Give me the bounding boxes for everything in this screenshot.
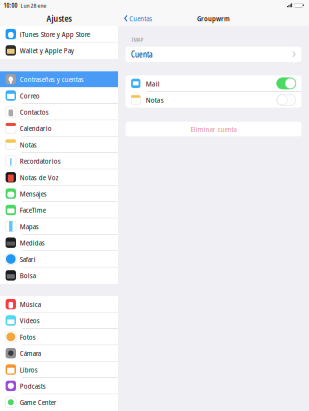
button[interactable]: Cuentas: [118, 10, 156, 26]
staticText: Mail: [146, 78, 160, 89]
button[interactable]: iTunes Store y App Store: [0, 26, 118, 43]
button[interactable]: Mapas: [0, 218, 118, 235]
staticText: Podcasts: [20, 381, 46, 391]
button[interactable]: Mail: [125, 75, 301, 91]
staticText: Wallet y Apple Pay: [20, 45, 74, 55]
button[interactable]: Libros: [0, 362, 118, 378]
staticText: IMAP: [132, 36, 144, 43]
button[interactable]: Bolsa: [0, 267, 118, 284]
button[interactable]: Música: [0, 296, 118, 313]
staticText: Notas: [20, 139, 37, 150]
button[interactable]: Contraseñas y cuentas: [0, 71, 118, 88]
button[interactable]: Podcasts: [0, 378, 118, 394]
button[interactable]: Medidas: [0, 235, 118, 251]
button[interactable]: Mail: [277, 78, 296, 89]
staticText: Cámara: [20, 348, 41, 358]
staticText: Mensajes: [20, 188, 47, 199]
button[interactable]: Fotos: [0, 329, 118, 345]
staticText: Cuenta: [131, 49, 153, 60]
staticText: Notas: [146, 95, 164, 105]
staticText: Correo: [20, 90, 40, 101]
staticText: Fotos: [20, 332, 36, 342]
button[interactable]: Notas de Voz: [0, 169, 118, 186]
staticText: Eliminar cuenta: [190, 124, 236, 134]
button[interactable]: Calendario: [0, 120, 118, 137]
staticText: Música: [20, 299, 41, 309]
button[interactable]: Vídeos: [0, 313, 118, 329]
button[interactable]: Recordatorios: [0, 153, 118, 169]
staticText: FaceTime: [20, 205, 46, 215]
staticText: Medidas: [20, 238, 45, 248]
staticText: 10:00: [4, 1, 18, 9]
button[interactable]: FaceTime: [0, 202, 118, 218]
button[interactable]: Eliminar cuenta: [125, 122, 301, 136]
staticText: Recordatorios: [20, 156, 61, 166]
staticText: Contactos: [20, 107, 49, 117]
button[interactable]: Cuenta: [125, 47, 301, 62]
button[interactable]: Notas: [125, 92, 301, 108]
staticText: Mapas: [20, 221, 39, 231]
button[interactable]: Mensajes: [0, 186, 118, 202]
button[interactable]: Wallet y Apple Pay: [0, 42, 118, 59]
staticText: Vídeos: [20, 315, 40, 326]
staticText: Groupwrm: [197, 13, 230, 23]
staticText: Lun 28 ene: [21, 1, 47, 9]
staticText: Notas de Voz: [20, 172, 59, 182]
button[interactable]: Correo: [0, 88, 118, 104]
staticText: Safari: [20, 254, 36, 264]
staticText: Calendario: [20, 123, 52, 133]
staticText: Ajustes: [46, 12, 71, 24]
staticText: Contraseñas y cuentas: [20, 74, 84, 84]
staticText: iTunes Store y App Store: [20, 29, 90, 39]
button[interactable]: Contactos: [0, 104, 118, 120]
staticText: Bolsa: [20, 270, 36, 280]
staticText: Cuentas: [129, 13, 152, 23]
staticText: Game Center: [20, 397, 57, 407]
button[interactable]: Notas: [0, 137, 118, 153]
button[interactable]: Game Center: [0, 394, 118, 411]
button[interactable]: Notas: [277, 94, 296, 105]
button[interactable]: Cámara: [0, 345, 118, 362]
staticText: Libros: [20, 364, 38, 375]
button[interactable]: Safari: [0, 251, 118, 267]
